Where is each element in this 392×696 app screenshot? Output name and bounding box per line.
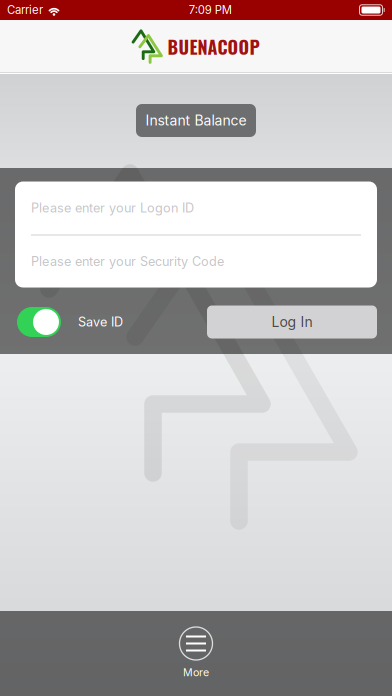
staticText: Save ID (78, 314, 123, 330)
staticText: Please enter your Security Code (31, 254, 224, 269)
staticText: Carrier (7, 3, 43, 17)
staticText: More (183, 666, 209, 679)
staticText: BUENACOOP (167, 33, 259, 60)
staticText: 7:09 PM (189, 3, 232, 17)
button[interactable]: More (0, 611, 392, 696)
staticText: Please enter your Logon ID (31, 200, 194, 216)
button[interactable]: Log In (207, 305, 377, 338)
staticText: Log In (271, 313, 312, 330)
button[interactable]: Save ID (0, 307, 133, 337)
button[interactable]: Instant Balance (136, 104, 256, 137)
staticText: Instant Balance (145, 112, 246, 129)
